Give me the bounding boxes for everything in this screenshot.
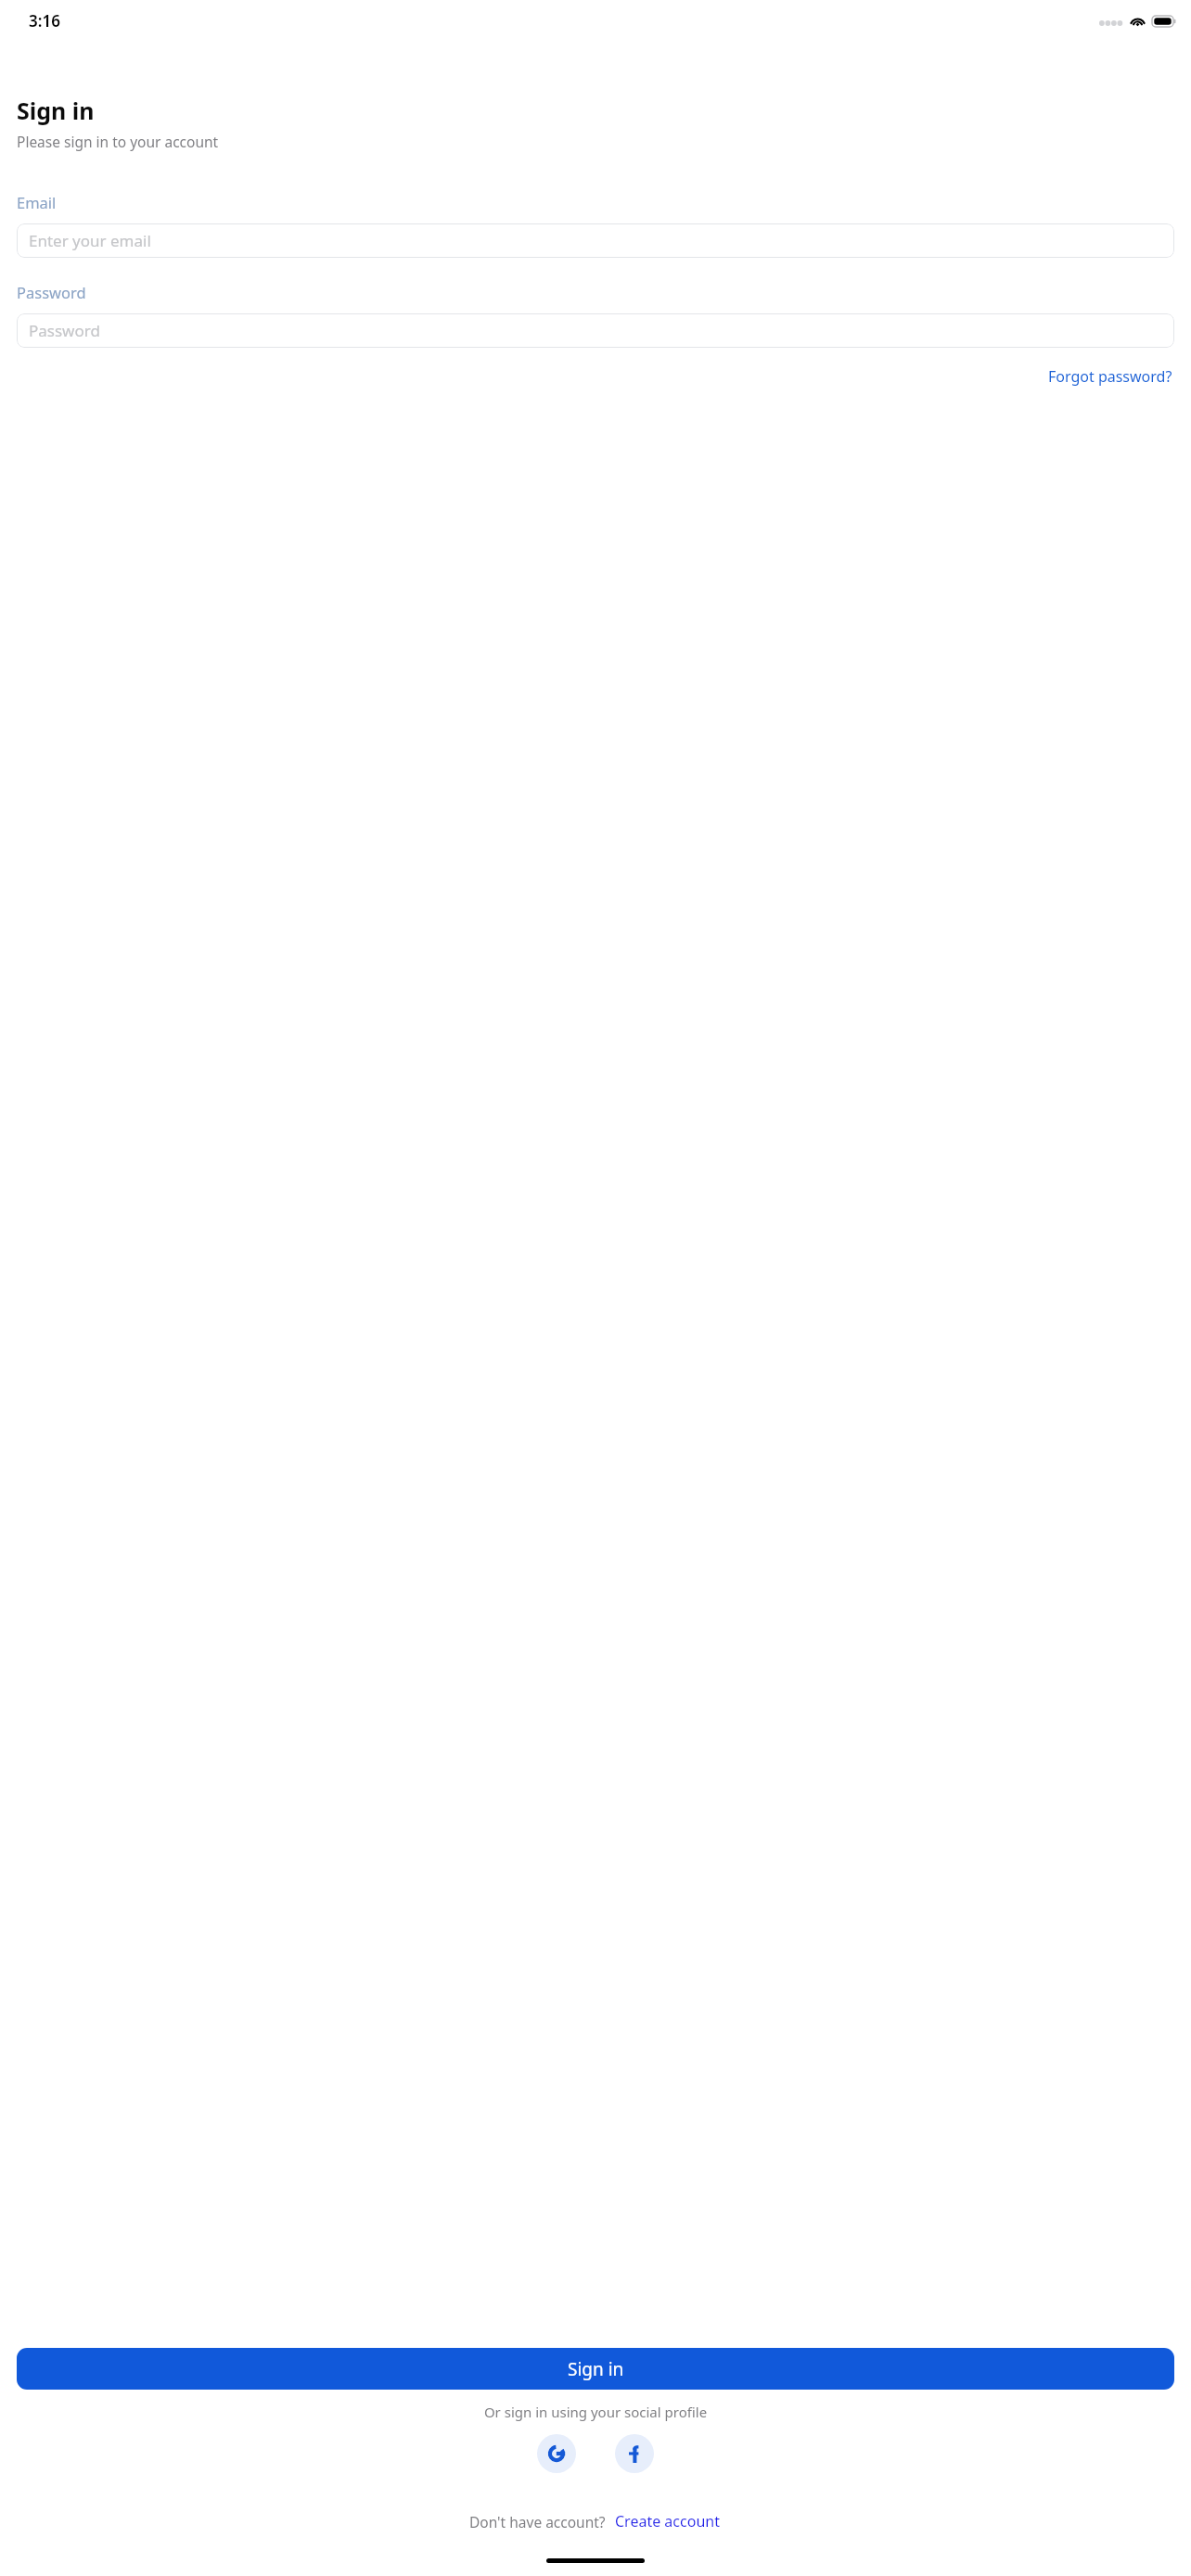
staticText: Don't have account? bbox=[469, 2512, 606, 2531]
staticText: Enter your email bbox=[29, 230, 151, 251]
button[interactable]: Create account bbox=[613, 2508, 722, 2534]
staticText: Please sign in to your account bbox=[17, 132, 219, 151]
button[interactable]: Password bbox=[17, 313, 1174, 348]
staticText: Or sign in using your social profile bbox=[0, 2403, 1191, 2421]
staticText: Email bbox=[17, 192, 57, 212]
button[interactable]: Sign in with Facebook bbox=[615, 2434, 654, 2473]
staticText: Forgot password? bbox=[1048, 366, 1172, 387]
staticText: Password bbox=[29, 320, 100, 341]
staticText: Sign in bbox=[17, 95, 95, 126]
button[interactable]: Sign in with Google bbox=[537, 2434, 576, 2473]
staticText: Sign in bbox=[568, 2357, 624, 2381]
staticText: 3:16 bbox=[29, 10, 60, 32]
staticText: Password bbox=[17, 282, 86, 302]
button[interactable]: Sign in bbox=[17, 2348, 1174, 2390]
staticText: Create account bbox=[615, 2511, 720, 2531]
button[interactable]: Forgot password? bbox=[1046, 363, 1174, 390]
button[interactable]: Enter your email bbox=[17, 223, 1174, 258]
